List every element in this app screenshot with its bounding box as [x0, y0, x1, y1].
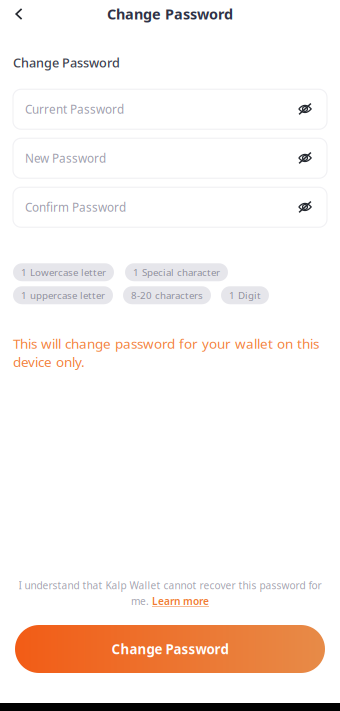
staticText: Change Password [107, 4, 233, 24]
staticText: 8-20 characters [131, 289, 203, 302]
button[interactable]: Change Password [15, 625, 325, 673]
staticText: New Password [25, 150, 106, 166]
staticText: I understand that Kalp Wallet cannot rec… [18, 578, 321, 592]
staticText: 1 Special character [133, 266, 220, 279]
staticText: Learn more [152, 594, 209, 608]
button[interactable]: Back [0, 1, 38, 27]
staticText: Current Password [25, 101, 124, 117]
button[interactable]: Show password [294, 196, 316, 218]
staticText: Change Password [111, 640, 228, 658]
staticText: Change Password [13, 54, 120, 71]
staticText: This will change password for your walle… [13, 334, 319, 371]
button[interactable]: Show password [294, 147, 316, 169]
staticText: Confirm Password [25, 199, 126, 215]
button[interactable]: Learn more [152, 594, 209, 608]
button[interactable]: Show password [294, 98, 316, 120]
staticText: me. [131, 594, 149, 608]
staticText: 1 uppercase letter [21, 289, 105, 302]
staticText: 1 Digit [229, 289, 261, 302]
staticText: 1 Lowercase letter [21, 266, 106, 279]
